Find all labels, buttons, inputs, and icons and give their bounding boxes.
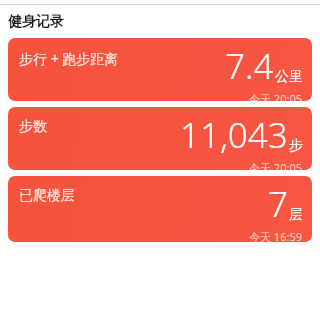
button[interactable]: 步数	[8, 107, 312, 170]
staticText: 已爬楼层	[19, 187, 75, 205]
staticText: 今天 16:59	[249, 229, 302, 242]
staticText: 步数	[19, 118, 47, 136]
staticText: 今天 20:05	[249, 160, 302, 170]
staticText: 健身记录	[8, 13, 64, 31]
button[interactable]: 步行 + 跑步距离	[8, 38, 312, 101]
staticText: 今天 20:05	[249, 91, 302, 101]
staticText: 层	[289, 206, 303, 224]
staticText: 11,043	[180, 111, 288, 159]
staticText: 7	[268, 180, 288, 228]
staticText: 7.4	[225, 42, 274, 90]
staticText: 公里	[275, 68, 303, 86]
staticText: 步行 + 跑步距离	[19, 49, 119, 68]
button[interactable]: 已爬楼层	[8, 176, 312, 242]
staticText: 步	[289, 137, 303, 155]
